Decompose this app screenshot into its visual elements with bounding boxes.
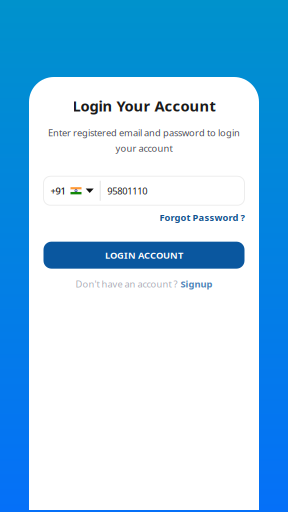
button[interactable]: Forgot Password ? [159, 211, 244, 224]
staticText: Forgot Password ? [159, 211, 244, 224]
staticText: your account [115, 142, 172, 154]
staticText: 95801110 [107, 185, 147, 197]
staticText: Don't have an account ? [75, 278, 177, 290]
button[interactable]: Signup [180, 278, 212, 290]
staticText: +91 [50, 185, 65, 197]
staticText: LOGIN ACCOUNT [105, 249, 183, 261]
button[interactable]: +91 [43, 177, 100, 204]
staticText: Login Your Account [72, 96, 215, 115]
staticText: Enter registered email and password to l… [48, 126, 240, 139]
staticText: Signup [180, 278, 212, 290]
button[interactable]: LOGIN ACCOUNT [43, 242, 244, 269]
